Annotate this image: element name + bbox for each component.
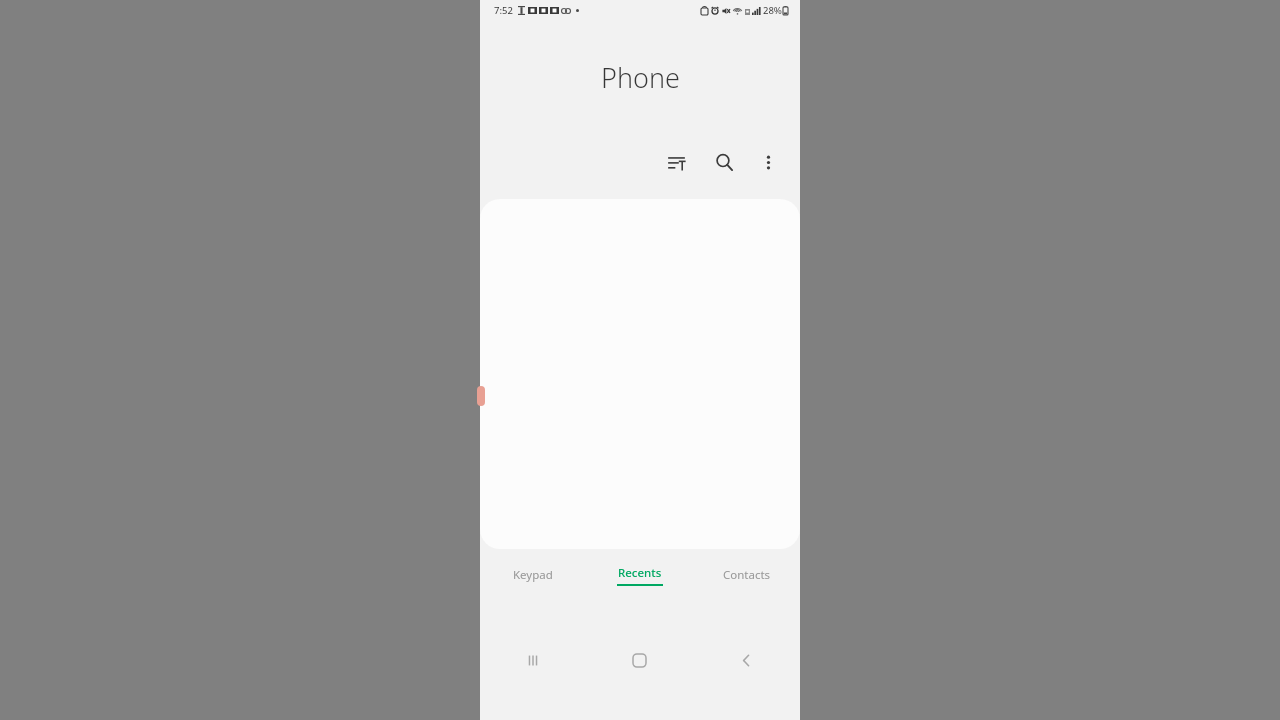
button[interactable]: Sort: [656, 142, 696, 182]
staticText: Recents: [618, 565, 662, 581]
staticText: Keypad: [513, 567, 553, 583]
button[interactable]: Edge panel handle: [477, 386, 485, 406]
button[interactable]: Search: [704, 142, 744, 182]
button[interactable]: [480, 199, 800, 549]
staticText: 7:52: [494, 4, 513, 17]
button[interactable]: More options: [748, 142, 788, 182]
button[interactable]: Home: [586, 601, 693, 720]
staticText: 28%: [763, 4, 782, 17]
button[interactable]: Contacts: [693, 549, 800, 601]
staticText: Phone: [601, 59, 680, 96]
button[interactable]: Keypad: [480, 549, 586, 601]
button[interactable]: Recent apps: [480, 601, 586, 720]
button[interactable]: Recents: [586, 549, 693, 601]
staticText: Contacts: [723, 567, 771, 583]
